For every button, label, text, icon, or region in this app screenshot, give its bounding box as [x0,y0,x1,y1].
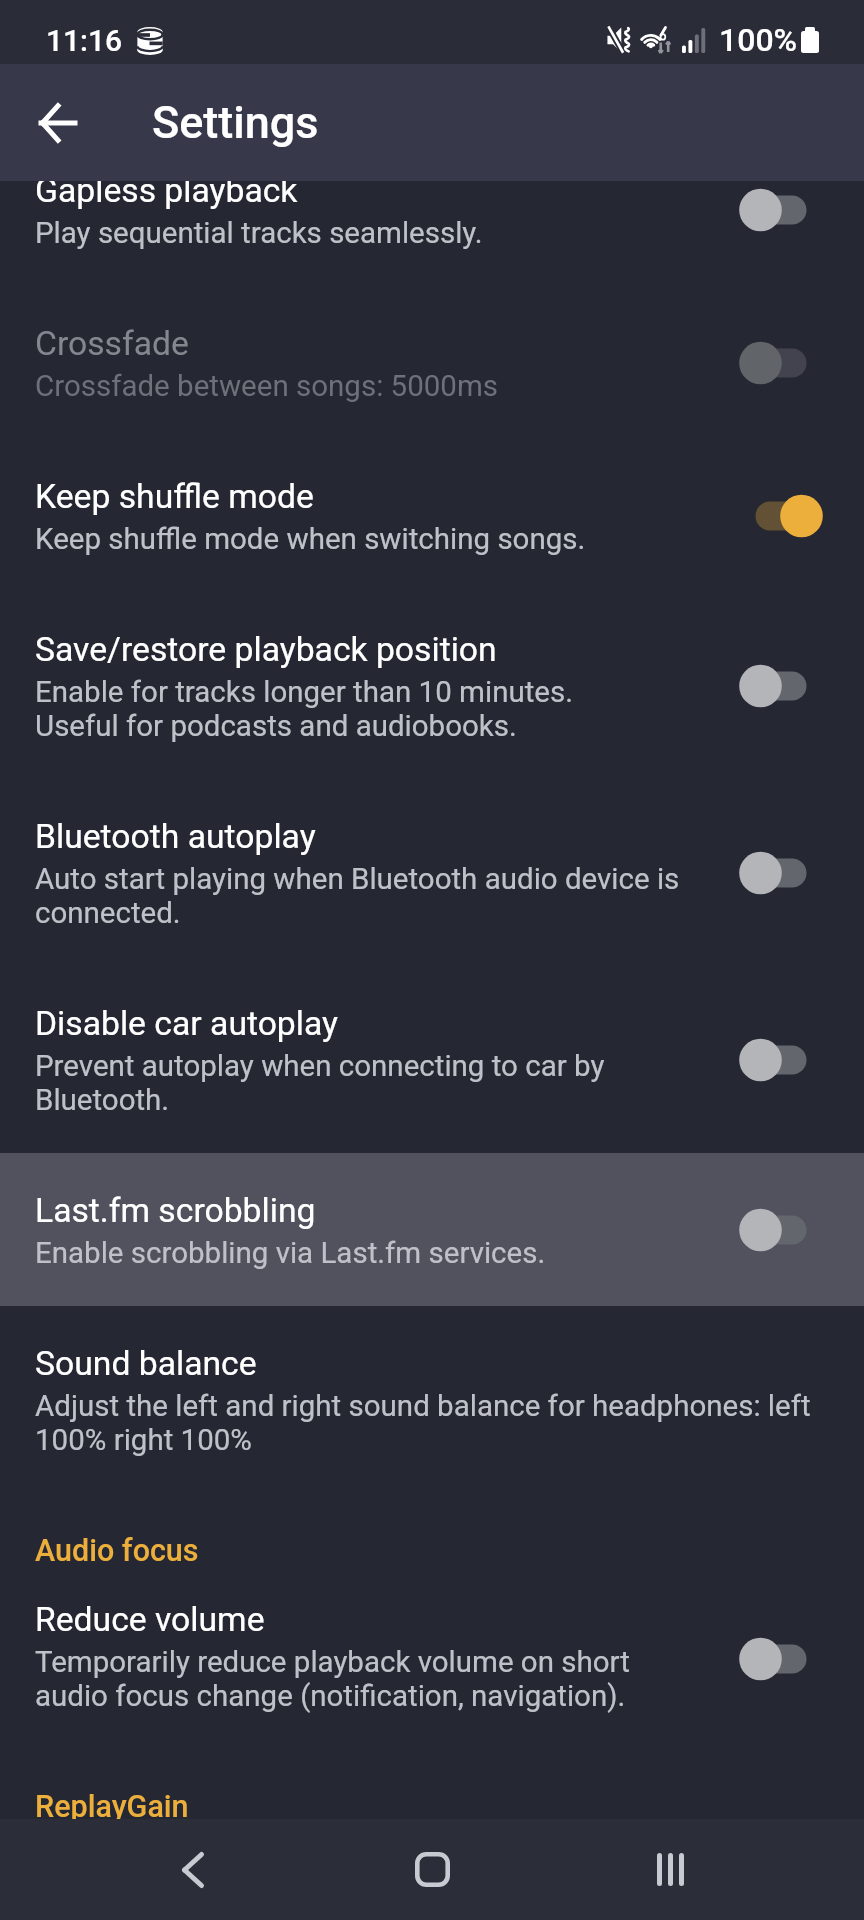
staticText: 100% [719,21,798,59]
staticText: Disable car autoplay [35,1003,338,1044]
button[interactable]: Recent apps [621,1819,722,1920]
button[interactable]: Toggle [726,835,836,911]
button[interactable]: Sound balance [0,1306,864,1493]
button[interactable]: Toggle [726,478,836,554]
button[interactable]: Disable car autoplay [0,966,864,1153]
button[interactable]: Last.fm scrobbling [0,1153,864,1306]
staticText: Temporarily reduce playback volume on sh… [35,1645,704,1713]
staticText: Reduce volume [35,1599,265,1640]
button[interactable]: Keep shuffle mode [0,439,864,592]
button[interactable]: Toggle [726,181,836,248]
button[interactable]: Bluetooth autoplay [0,779,864,966]
button[interactable]: Back [142,1819,243,1920]
staticText: Save/restore playback position [35,629,497,670]
staticText: Sound balance [35,1343,257,1384]
staticText: Auto start playing when Bluetooth audio … [35,862,704,930]
staticText: Enable for tracks longer than 10 minutes… [35,675,573,743]
button[interactable]: Toggle [726,1022,836,1098]
button[interactable]: Audio focus [0,1493,864,1569]
staticText: Keep shuffle mode when switching songs. [35,522,586,556]
staticText: Keep shuffle mode [35,476,314,517]
staticText: Play sequential tracks seamlessly. [35,216,483,250]
staticText: Settings [152,96,319,149]
button[interactable]: Toggle [726,325,836,401]
button[interactable]: Reduce volume [0,1569,864,1749]
button[interactable]: Home [382,1819,483,1920]
staticText: 11:16 [46,23,123,58]
staticText: Prevent autoplay when connecting to car … [35,1049,704,1117]
button[interactable]: Toggle [726,648,836,724]
staticText: Crossfade between songs: 5000ms [35,369,499,403]
button[interactable]: ReplayGain [0,1749,864,1819]
button[interactable]: Crossfade [0,286,864,439]
button[interactable]: Save/restore playback position [0,592,864,779]
staticText: Last.fm scrobbling [35,1190,316,1231]
button[interactable]: Toggle [726,1192,836,1268]
staticText: Bluetooth autoplay [35,816,316,857]
button[interactable]: Toggle [726,1621,836,1697]
button[interactable]: Gapless playback [0,181,864,286]
staticText: Enable scrobbling via Last.fm services. [35,1236,546,1270]
staticText: Gapless playback [35,181,298,211]
staticText: Crossfade [35,323,189,364]
staticText: Adjust the left and right sound balance … [35,1389,827,1457]
button[interactable]: Back [14,79,102,167]
